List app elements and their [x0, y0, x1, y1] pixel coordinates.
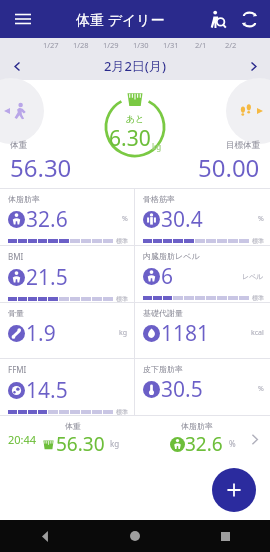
staticText: %	[258, 384, 264, 394]
button[interactable]: FFMI	[0, 359, 134, 415]
staticText: 6.30	[109, 124, 151, 153]
staticText: %	[258, 214, 264, 224]
staticText: 標準	[116, 237, 128, 245]
staticText: 標準	[116, 408, 128, 415]
staticText: 基礎代謝量	[143, 308, 183, 318]
button[interactable]: Next day	[236, 52, 270, 80]
staticText: 32.6	[26, 205, 68, 234]
button[interactable]: More details	[242, 427, 266, 451]
staticText: 体脂肪率	[181, 421, 213, 431]
staticText: 56.30	[56, 431, 105, 457]
button[interactable]: Previous day	[0, 52, 34, 80]
staticText: 1/31	[163, 40, 179, 50]
staticText: 2月2日(月)	[104, 57, 166, 75]
staticText: レベル	[242, 272, 264, 281]
staticText: 内臓脂肪レベル	[143, 251, 200, 261]
staticText: kg	[110, 438, 120, 449]
button[interactable]: Steps	[226, 78, 270, 144]
staticText: 目標体重	[226, 140, 260, 151]
staticText: 体重 デイリー	[76, 10, 165, 29]
staticText: 2/1	[195, 40, 207, 50]
staticText: 1.9	[26, 319, 56, 348]
button[interactable]: Remaining weight	[102, 94, 168, 160]
button[interactable]: 体脂肪率	[0, 189, 134, 245]
button[interactable]: 骨量	[0, 303, 134, 358]
button[interactable]: Back	[0, 520, 90, 552]
staticText: あと	[126, 113, 145, 124]
button[interactable]: Search person	[202, 4, 232, 34]
staticText: 体脂肪率	[8, 194, 40, 204]
staticText: BMI	[8, 251, 24, 262]
staticText: 1181	[161, 319, 210, 348]
staticText: 1/30	[133, 40, 149, 50]
staticText: 皮下脂肪率	[143, 364, 183, 374]
button[interactable]: BMI	[0, 246, 134, 302]
button[interactable]: Activity	[0, 78, 44, 144]
button[interactable]: 皮下脂肪率	[135, 359, 270, 415]
button[interactable]: Add record	[212, 468, 256, 512]
button[interactable]: 骨格筋率	[135, 189, 270, 245]
button[interactable]: Recent apps	[180, 520, 270, 552]
button[interactable]: 基礎代謝量	[135, 303, 270, 358]
staticText: 50.00	[198, 151, 260, 184]
staticText: 6	[161, 262, 174, 291]
staticText: 30.5	[161, 375, 203, 404]
staticText: 56.30	[10, 151, 72, 184]
button[interactable]: Home	[90, 520, 180, 552]
staticText: 32.6	[185, 431, 223, 457]
staticText: %	[122, 214, 128, 224]
staticText: 標準	[252, 294, 264, 302]
staticText: 21.5	[26, 263, 68, 292]
staticText: 標準	[252, 237, 264, 245]
staticText: 骨格筋率	[143, 194, 175, 204]
staticText: 標準	[116, 295, 128, 302]
staticText: 体重	[10, 140, 27, 151]
staticText: kcal	[251, 328, 264, 338]
staticText: 骨量	[8, 308, 24, 318]
button[interactable]: Menu	[8, 4, 38, 34]
button[interactable]: 20:44	[0, 416, 270, 462]
staticText: 体重	[65, 421, 81, 431]
staticText: 30.4	[161, 205, 203, 234]
staticText: kg	[152, 141, 162, 152]
staticText: 14.5	[26, 376, 68, 405]
button[interactable]: Sync	[234, 4, 264, 34]
staticText: 1/28	[73, 40, 89, 50]
staticText: 1/27	[43, 40, 59, 50]
staticText: 20:44	[8, 432, 37, 447]
staticText: kg	[119, 328, 128, 338]
button[interactable]: 内臓脂肪レベル	[135, 246, 270, 302]
staticText: FFMI	[8, 364, 27, 375]
staticText: 2/2	[225, 40, 237, 50]
staticText: 1/29	[103, 40, 119, 50]
staticText: %	[229, 438, 236, 449]
